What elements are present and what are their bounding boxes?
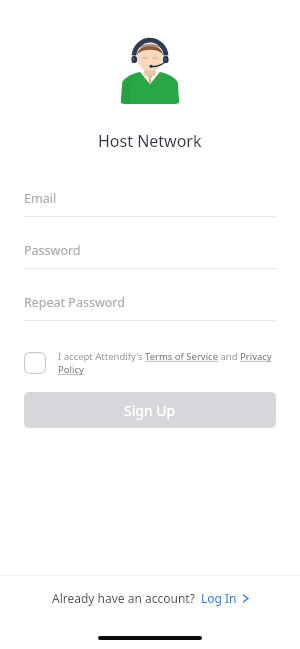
button[interactable]: Repeat Password (24, 284, 276, 336)
staticText: Password (24, 242, 81, 259)
staticText: Sign Up (124, 401, 176, 420)
staticText: Already have an account? (52, 590, 195, 606)
staticText: I accept Attendify's Terms of Service an… (58, 350, 276, 376)
button[interactable]: Log In (201, 590, 249, 606)
staticText: Repeat Password (24, 294, 125, 311)
button[interactable]: I accept Attendify's Terms of Service an… (24, 350, 276, 376)
staticText: Email (24, 190, 57, 207)
button[interactable]: Email (24, 180, 276, 232)
staticText: Host Network (98, 130, 202, 152)
button[interactable]: Sign Up (24, 392, 276, 428)
other: Host network avatar (112, 28, 188, 104)
button[interactable]: Password (24, 232, 276, 284)
staticText: Log In (201, 590, 237, 606)
